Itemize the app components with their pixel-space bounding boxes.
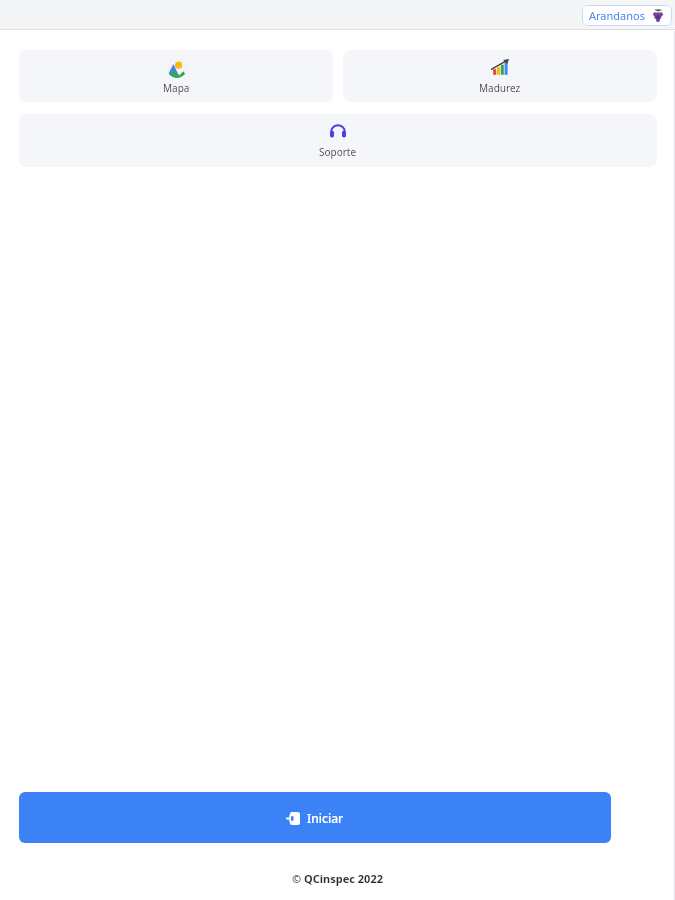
staticText: Soporte — [319, 145, 357, 159]
staticText: Madurez — [479, 81, 521, 95]
button[interactable]: Soporte — [19, 114, 657, 167]
other: Soporte — [328, 122, 348, 142]
button[interactable]: Madurez — [343, 50, 657, 102]
button[interactable]: Arandanos — [582, 5, 672, 26]
staticText: © QCinspec 2022 — [292, 871, 383, 886]
button[interactable]: Iniciar — [19, 792, 611, 843]
button[interactable]: Mapa — [19, 50, 333, 102]
staticText: Iniciar — [307, 810, 344, 826]
staticText: Mapa — [163, 81, 190, 95]
other: Mapa — [167, 58, 187, 78]
staticText: Arandanos — [589, 8, 645, 23]
other: Madurez — [490, 58, 510, 78]
